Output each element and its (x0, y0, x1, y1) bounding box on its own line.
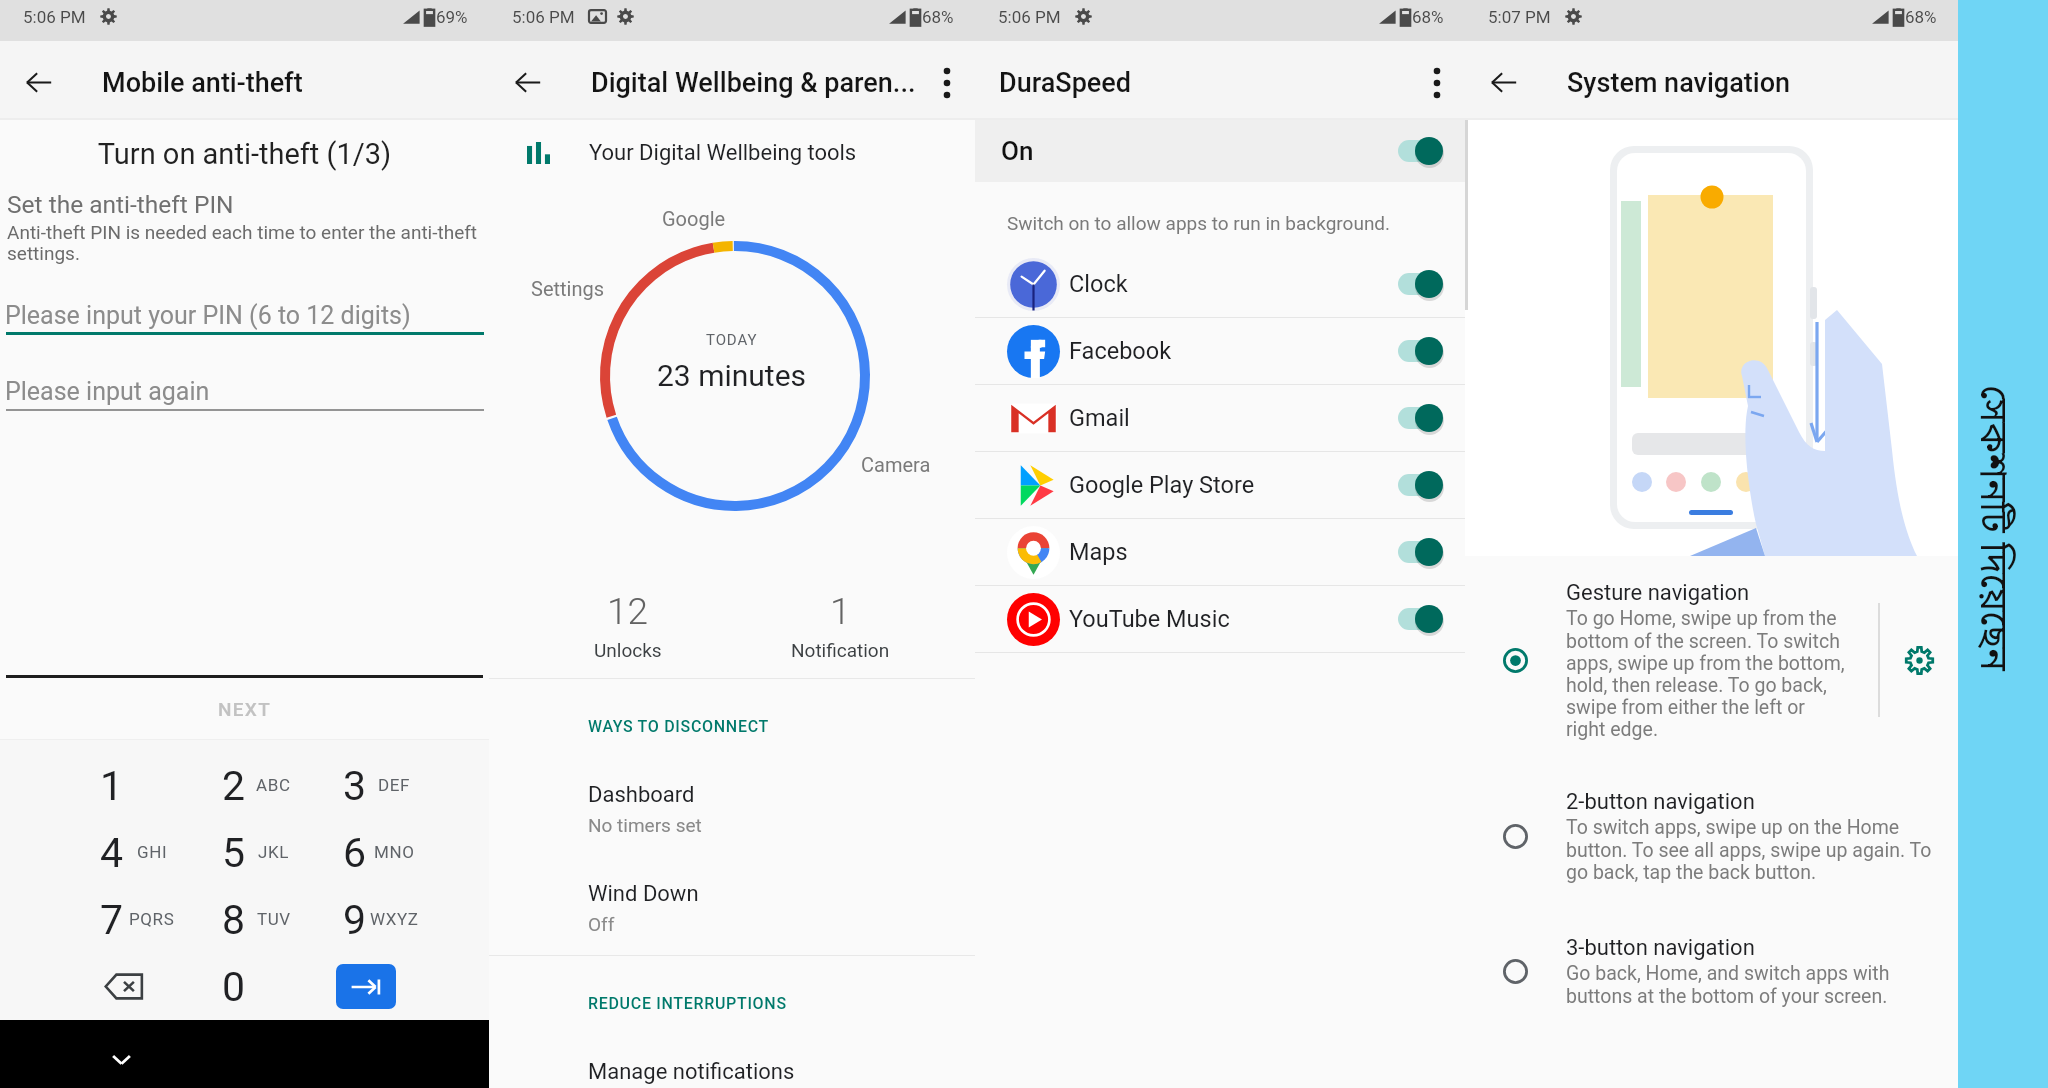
button[interactable]: Facebook (975, 318, 1465, 384)
staticText: Gmail (1069, 404, 1130, 432)
staticText: Unlocks (594, 639, 662, 661)
button[interactable]: On (975, 120, 1465, 182)
staticText: YouTube Music (1069, 605, 1230, 633)
button[interactable]: More options (919, 47, 975, 118)
staticText: Go back, Home, and switch apps with butt… (1566, 962, 1937, 1007)
button[interactable]: 8 (173, 886, 294, 953)
staticText: Anti-theft PIN is needed each time to en… (7, 221, 485, 265)
staticText: Dashboard (588, 782, 695, 808)
staticText: MNO (374, 842, 415, 862)
staticText: Facebook (1069, 337, 1172, 365)
button[interactable]: 3-button navigation (1465, 935, 1958, 1007)
staticText: 68% (1412, 7, 1444, 27)
staticText: 1 (830, 590, 851, 633)
staticText: 8 (222, 896, 246, 944)
staticText: Mobile anti-theft (102, 67, 303, 99)
staticText: Please input your PIN (6 to 12 digits) (5, 301, 411, 330)
staticText: Digital Wellbeing & paren... (591, 67, 916, 99)
button[interactable]: Delete (51, 953, 173, 1020)
button[interactable]: Please input your PIN (6 to 12 digits) (0, 301, 489, 335)
staticText: Wind Down (588, 881, 699, 907)
button[interactable]: 7 (51, 886, 173, 953)
staticText: To go Home, swipe up from the bottom of … (1566, 607, 1849, 740)
button[interactable]: 1 (51, 752, 173, 819)
staticText: সেকশনটি দিয়েছেন (1966, 368, 2016, 688)
staticText: 1 (100, 762, 124, 810)
staticText: 9 (343, 896, 367, 944)
staticText: DuraSpeed (999, 67, 1132, 99)
staticText: 5:06 PM (998, 7, 1061, 27)
staticText: 12 (607, 590, 649, 633)
button[interactable]: Clock (975, 251, 1465, 317)
staticText: Notification (791, 639, 890, 661)
staticText: 3 (343, 762, 367, 810)
button[interactable]: 12 (522, 590, 734, 678)
button[interactable]: Gesture navigation settings (1880, 621, 1958, 699)
staticText: Manage notifications (588, 1059, 795, 1085)
button[interactable]: Google Play Store (975, 452, 1465, 518)
staticText: Please input again (5, 377, 210, 406)
button[interactable]: 1 (734, 590, 946, 678)
staticText: TUV (257, 909, 291, 929)
button[interactable]: Wind Down (489, 881, 975, 935)
staticText: Gesture navigation (1566, 580, 1750, 606)
staticText: 68% (1905, 7, 1937, 27)
staticText: Google (662, 207, 726, 230)
staticText: JKL (258, 842, 290, 862)
staticText: No timers set (588, 814, 702, 836)
button[interactable]: 5 (173, 819, 294, 886)
button[interactable]: Maps (975, 519, 1465, 585)
staticText: Maps (1069, 538, 1128, 566)
button[interactable]: 9 (294, 886, 415, 953)
button[interactable]: Navigate up (1465, 47, 1541, 118)
button[interactable]: Gesture navigation (1465, 580, 1958, 740)
button[interactable]: 0 (173, 953, 294, 1020)
staticText: PQRS (129, 909, 175, 929)
button[interactable]: Next (336, 964, 396, 1009)
button[interactable]: 6 (294, 819, 415, 886)
button[interactable]: More options (1409, 47, 1465, 118)
staticText: 69% (436, 7, 468, 27)
staticText: 4 (100, 829, 124, 877)
button[interactable]: NEXT (0, 678, 489, 739)
staticText: 3-button navigation (1566, 935, 1755, 961)
staticText: Turn on anti-theft (1/3) (0, 137, 489, 171)
staticText: Switch on to allow apps to run in backgr… (1007, 212, 1391, 234)
button[interactable]: Navigate up (0, 47, 76, 118)
staticText: NEXT (218, 698, 272, 720)
button[interactable]: Please input again (0, 377, 489, 411)
button[interactable]: Dashboard (489, 782, 975, 836)
button[interactable]: 2 (173, 752, 294, 819)
staticText: 5:06 PM (23, 7, 86, 27)
button[interactable]: 4 (51, 819, 173, 886)
staticText: To switch apps, swipe up on the Home but… (1566, 816, 1937, 883)
staticText: 6 (343, 829, 367, 877)
staticText: Off (588, 913, 615, 935)
staticText: DEF (378, 775, 411, 795)
button[interactable]: 3 (294, 752, 415, 819)
staticText: 5:07 PM (1488, 7, 1551, 27)
staticText: 7 (100, 896, 124, 944)
staticText: Set the anti-theft PIN (7, 190, 234, 219)
staticText: REDUCE INTERRUPTIONS (588, 994, 787, 1013)
button[interactable]: 2-button navigation (1465, 789, 1958, 883)
button[interactable]: YouTube Music (975, 586, 1465, 652)
staticText: 5 (222, 829, 246, 877)
button[interactable]: Your Digital Wellbeing tools (489, 120, 975, 186)
staticText: Google Play Store (1069, 471, 1255, 499)
staticText: System navigation (1567, 67, 1791, 99)
staticText: TODAY (706, 331, 758, 349)
staticText: Clock (1069, 270, 1128, 298)
button[interactable]: Navigate up (489, 47, 565, 118)
staticText: On (1001, 136, 1034, 166)
staticText: 2-button navigation (1566, 789, 1755, 815)
staticText: WAYS TO DISCONNECT (588, 717, 770, 736)
button[interactable]: Hide keyboard (104, 1042, 139, 1077)
staticText: 5:06 PM (512, 7, 575, 27)
button[interactable]: Gmail (975, 385, 1465, 451)
staticText: 23 minutes (657, 358, 807, 393)
staticText: Your Digital Wellbeing tools (589, 140, 857, 166)
staticText: WXYZ (370, 909, 419, 929)
staticText: ABC (256, 775, 291, 795)
staticText: 0 (222, 963, 246, 1011)
